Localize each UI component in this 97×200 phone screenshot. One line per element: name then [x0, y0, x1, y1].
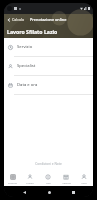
button[interactable]: Condizioni e Note [4, 160, 93, 168]
staticText: Info [46, 181, 51, 184]
staticText: Data e ora [17, 82, 38, 88]
staticText: Profilo [26, 181, 34, 184]
button[interactable]: Specialist [4, 57, 93, 75]
button[interactable]: Info [39, 171, 57, 186]
staticText: Prenotazione online [30, 17, 67, 22]
staticText: Servizio [17, 44, 33, 50]
button[interactable]: Recents [68, 187, 78, 197]
staticText: Prenota [8, 181, 17, 184]
button[interactable]: Indietro, Calcolo [4, 14, 27, 25]
button[interactable]: Agenda [57, 171, 75, 186]
button[interactable]: Altro [75, 171, 93, 186]
button[interactable]: Data e ora [4, 76, 93, 94]
staticText: Specialist [17, 63, 36, 69]
button[interactable]: Profilo [21, 171, 39, 186]
staticText: Agenda [62, 181, 71, 184]
staticText: Lavoro Sfilato Lazio [7, 28, 58, 35]
button[interactable]: Back [19, 187, 29, 197]
button[interactable]: Home [44, 187, 54, 197]
staticText: Altro [81, 181, 87, 184]
button[interactable]: Prenota [4, 171, 21, 186]
button[interactable]: Servizio [4, 38, 93, 56]
staticText: Calcolo [12, 17, 25, 22]
